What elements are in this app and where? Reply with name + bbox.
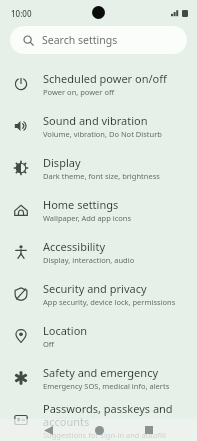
button[interactable]: Back: [38, 420, 58, 440]
staticText: Home settings: [43, 197, 119, 212]
staticText: Location: [43, 323, 88, 338]
staticText: Volume, vibration, Do Not Disturb: [43, 129, 162, 139]
button[interactable]: Accessibility: [0, 231, 197, 273]
button[interactable]: Passwords, passkeys and accounts: [0, 399, 197, 441]
button[interactable]: Safety and emergency: [0, 357, 197, 399]
staticText: Search settings: [42, 33, 118, 47]
button[interactable]: Scheduled power on/off: [0, 63, 197, 105]
staticText: Emergency SOS, medical info, alerts: [43, 381, 170, 391]
staticText: Display, interaction, audio: [43, 255, 135, 265]
staticText: 10:00: [11, 8, 32, 19]
button[interactable]: Security and privacy: [0, 273, 197, 315]
button[interactable]: Home: [89, 420, 109, 440]
staticText: Display: [43, 155, 81, 170]
staticText: Power on, power off: [43, 87, 115, 97]
button[interactable]: Display: [0, 147, 197, 189]
staticText: Suggestions for sign-in and autofill: [43, 430, 166, 440]
staticText: Scheduled power on/off: [43, 71, 167, 86]
button[interactable]: Recent apps: [139, 420, 159, 440]
button[interactable]: Location: [0, 315, 197, 357]
staticText: Accessibility: [43, 239, 106, 254]
button[interactable]: Search settings: [10, 26, 187, 54]
button[interactable]: Home settings: [0, 189, 197, 231]
staticText: Security and privacy: [43, 281, 147, 296]
staticText: Passwords, passkeys and accounts: [43, 401, 173, 429]
staticText: Wallpaper, Add app icons: [43, 213, 132, 223]
staticText: Dark theme, font size, brightness: [43, 171, 160, 181]
staticText: Safety and emergency: [43, 365, 159, 380]
staticText: App security, device lock, permissions: [43, 297, 176, 307]
staticText: Sound and vibration: [43, 113, 148, 128]
button[interactable]: Sound and vibration: [0, 105, 197, 147]
staticText: Off: [43, 339, 55, 349]
